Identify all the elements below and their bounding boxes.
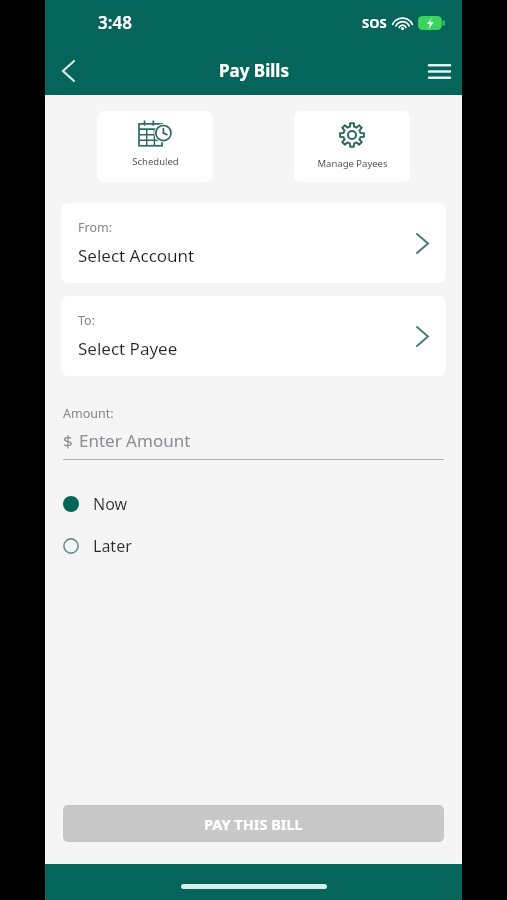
staticText: From: bbox=[78, 219, 113, 236]
staticText: $ bbox=[63, 429, 73, 452]
button[interactable]: Menu bbox=[416, 48, 462, 94]
staticText: Amount: bbox=[63, 405, 114, 422]
button[interactable]: From: bbox=[61, 203, 446, 283]
staticText: Scheduled bbox=[132, 155, 179, 168]
staticText: Select Payee bbox=[78, 337, 178, 360]
button[interactable]: Back bbox=[45, 48, 91, 94]
staticText: Pay Bills bbox=[219, 59, 289, 82]
staticText: To: bbox=[78, 312, 95, 329]
staticText: Select Account bbox=[78, 244, 195, 267]
staticText: PAY THIS BILL bbox=[204, 814, 303, 834]
button[interactable]: Now bbox=[45, 488, 462, 520]
button[interactable]: Scheduled bbox=[97, 111, 213, 182]
button[interactable]: To: bbox=[61, 296, 446, 376]
staticText: Now bbox=[93, 493, 128, 515]
button[interactable]: PAY THIS BILL bbox=[63, 805, 444, 842]
button[interactable]: Later bbox=[45, 530, 462, 562]
staticText: SOS bbox=[362, 14, 387, 32]
staticText: Enter Amount bbox=[79, 429, 191, 452]
button[interactable]: Manage Payees bbox=[294, 111, 410, 182]
staticText: Manage Payees bbox=[317, 157, 388, 170]
staticText: Later bbox=[93, 535, 132, 557]
staticText: 3:48 bbox=[98, 11, 132, 34]
